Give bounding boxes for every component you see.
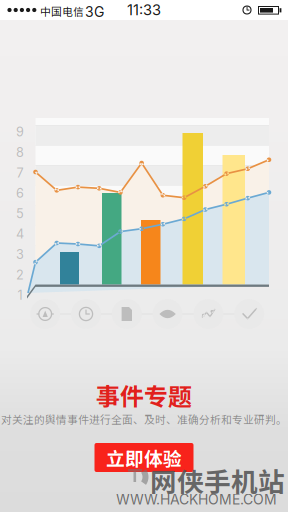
staticText: 9: [16, 124, 24, 140]
staticText: 8: [16, 145, 24, 160]
staticText: 1: [17, 287, 22, 303]
staticText: WWW.HACKHOME.COM: [116, 491, 277, 508]
staticText: 4: [16, 226, 24, 242]
staticText: 对关注的舆情事件进行全面、及时、准确分析和专业研判。: [1, 411, 287, 427]
staticText: 事件专题: [96, 378, 192, 412]
staticText: 11:33: [127, 1, 161, 19]
staticText: 2: [16, 267, 24, 282]
staticText: 3: [16, 247, 24, 262]
staticText: 5: [16, 206, 24, 221]
staticText: 立即体验: [106, 444, 182, 471]
staticText: 6: [16, 185, 24, 201]
staticText: 3G: [85, 3, 104, 20]
staticText: 7: [16, 165, 23, 180]
staticText: 网侠手机站: [150, 461, 285, 500]
button[interactable]: 立即体验: [94, 443, 193, 472]
staticText: 中国电信: [40, 3, 84, 19]
